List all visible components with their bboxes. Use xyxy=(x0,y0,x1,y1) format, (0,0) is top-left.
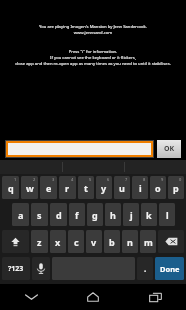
staticText: z xyxy=(37,236,42,248)
button[interactable]: v xyxy=(86,230,102,253)
button[interactable]: h xyxy=(105,203,121,226)
button[interactable]: o xyxy=(150,176,166,199)
staticText: u xyxy=(119,182,125,194)
staticText: 6 xyxy=(107,177,110,182)
button[interactable]: Voice input xyxy=(32,257,50,280)
staticText: j xyxy=(130,209,133,221)
staticText: o xyxy=(155,182,161,194)
button[interactable]: l xyxy=(159,203,175,226)
staticText: r xyxy=(65,182,70,194)
staticText: y xyxy=(101,182,107,194)
staticText: g xyxy=(92,209,98,221)
button[interactable]: r xyxy=(59,176,76,199)
staticText: i xyxy=(139,182,142,194)
button[interactable]: y xyxy=(96,176,112,199)
staticText: You are playing Imogen's Mansion by Jenn… xyxy=(4,24,182,30)
staticText: p xyxy=(173,182,179,194)
staticText: . xyxy=(144,263,147,274)
staticText: c xyxy=(74,236,79,248)
button[interactable]: x xyxy=(50,230,66,253)
staticText: Done xyxy=(160,264,180,274)
staticText: s xyxy=(37,209,42,221)
staticText: 4 xyxy=(71,177,74,182)
staticText: b xyxy=(109,236,115,248)
staticText: d xyxy=(56,209,62,221)
staticText: t xyxy=(84,182,88,194)
staticText: close app and then re-open app as many t… xyxy=(4,61,182,67)
button[interactable]: Shift xyxy=(2,230,29,253)
button[interactable]: Delete xyxy=(158,230,184,253)
button[interactable]: d xyxy=(50,203,67,226)
button[interactable]: t xyxy=(78,176,94,199)
staticText: k xyxy=(146,209,152,221)
staticText: 8 xyxy=(143,177,146,182)
button[interactable]: a xyxy=(12,203,29,226)
staticText: 5 xyxy=(89,177,92,182)
button[interactable]: k xyxy=(141,203,157,226)
staticText: www.jennsand.com xyxy=(4,30,182,36)
staticText: a xyxy=(18,209,24,221)
button[interactable]: . xyxy=(137,257,153,280)
staticText: e xyxy=(46,182,52,194)
button[interactable]: i xyxy=(132,176,148,199)
staticText: 1 xyxy=(14,177,17,182)
button[interactable]: s xyxy=(31,203,48,226)
staticText: w xyxy=(26,182,34,194)
button[interactable]: c xyxy=(68,230,84,253)
button[interactable]: u xyxy=(114,176,130,199)
button[interactable]: Hide keyboard xyxy=(0,284,62,310)
staticText: 3 xyxy=(52,177,55,182)
button[interactable]: j xyxy=(123,203,139,226)
staticText: OK xyxy=(164,144,175,154)
button[interactable]: e xyxy=(40,176,57,199)
staticText: f xyxy=(75,209,79,221)
staticText: 7 xyxy=(125,177,128,182)
button[interactable]: f xyxy=(69,203,85,226)
staticText: n xyxy=(127,236,133,248)
button[interactable]: z xyxy=(31,230,48,253)
button[interactable]: Recent apps xyxy=(124,284,186,310)
staticText: If you cannot see the keyboard or it fli… xyxy=(4,55,182,61)
staticText: 2 xyxy=(33,177,36,182)
button[interactable]: OK xyxy=(157,140,181,158)
staticText: 0 xyxy=(179,177,182,182)
staticText: v xyxy=(91,236,97,248)
staticText: 9 xyxy=(161,177,164,182)
staticText: x xyxy=(55,236,61,248)
button[interactable]: n xyxy=(122,230,138,253)
button[interactable]: g xyxy=(87,203,103,226)
button[interactable]: q xyxy=(2,176,19,199)
staticText: h xyxy=(110,209,116,221)
button[interactable]: Home xyxy=(62,284,124,310)
button[interactable]: b xyxy=(104,230,120,253)
button[interactable]: p xyxy=(168,176,184,199)
staticText: ?123 xyxy=(8,264,24,274)
button[interactable]: Done xyxy=(155,257,184,280)
staticText: q xyxy=(8,182,14,194)
staticText: l xyxy=(166,209,169,221)
button[interactable]: m xyxy=(140,230,156,253)
staticText: Press "i" for information. xyxy=(4,49,182,55)
button[interactable]: ?123 xyxy=(2,257,30,280)
staticText: m xyxy=(144,236,153,248)
button[interactable]: w xyxy=(21,176,38,199)
